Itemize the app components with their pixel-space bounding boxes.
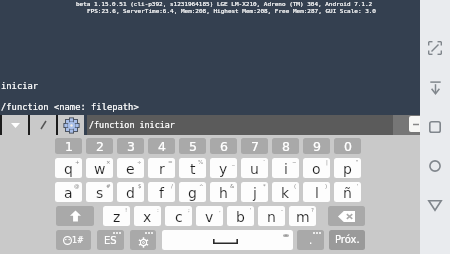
- staticText: 6: [220, 139, 228, 154]
- button[interactable]: h: [210, 182, 237, 202]
- staticText: c: [175, 209, 183, 225]
- button[interactable]: o: [303, 158, 330, 178]
- staticText: 4: [158, 139, 166, 154]
- button[interactable]: Insert slash: [30, 115, 56, 135]
- button[interactable]: g: [179, 182, 206, 202]
- button[interactable]: b: [227, 206, 254, 226]
- staticText: 7: [251, 139, 259, 154]
- staticText: -: [281, 207, 283, 213]
- button[interactable]: d: [117, 182, 144, 202]
- button[interactable]: ñ: [334, 182, 361, 202]
- button[interactable]: 6: [210, 138, 237, 154]
- staticText: ñ: [343, 185, 352, 201]
- button[interactable]: 8: [272, 138, 299, 154]
- staticText: ': [250, 207, 252, 213]
- staticText: 5: [189, 139, 197, 154]
- staticText: 1: [65, 139, 73, 154]
- button[interactable]: Show suggestions: [2, 115, 28, 135]
- button[interactable]: m: [289, 206, 316, 226]
- button[interactable]: k: [272, 182, 299, 202]
- staticText: s: [96, 185, 104, 201]
- staticText: q: [64, 161, 73, 177]
- staticText: d: [126, 185, 135, 201]
- staticText: /: [171, 183, 173, 189]
- button[interactable]: q: [55, 158, 82, 178]
- staticText: :: [157, 207, 159, 213]
- staticText: |: [326, 159, 328, 165]
- button[interactable]: w: [86, 158, 113, 178]
- staticText: b: [236, 209, 245, 225]
- button[interactable]: n: [258, 206, 285, 226]
- button[interactable]: Próx.: [329, 230, 365, 250]
- staticText: $: [138, 183, 142, 189]
- staticText: beta 1.15.0.51 (cli-p392, s1231964185) L…: [76, 0, 373, 7]
- button[interactable]: f: [148, 182, 175, 202]
- staticText: n: [267, 209, 276, 225]
- button[interactable]: 9: [303, 138, 330, 154]
- staticText: +: [75, 159, 80, 165]
- staticText: /function <name: filepath>: [1, 102, 139, 112]
- button[interactable]: y: [210, 158, 237, 178]
- staticText: ^: [199, 183, 204, 189]
- staticText: FPS:23.6, ServerTime:6.4, Mem:208, Highe…: [87, 7, 376, 14]
- button[interactable]: Expand: [420, 35, 450, 61]
- button[interactable]: 4: [148, 138, 175, 154]
- button[interactable]: r: [148, 158, 175, 178]
- button[interactable]: t: [179, 158, 206, 178]
- staticText: x: [143, 209, 152, 225]
- staticText: ~: [292, 159, 297, 165]
- button[interactable]: v: [196, 206, 223, 226]
- button[interactable]: Command input: [87, 115, 393, 135]
- button[interactable]: Space: [162, 230, 293, 250]
- staticText: a: [64, 185, 73, 201]
- staticText: u: [250, 161, 259, 177]
- staticText: 9: [313, 139, 321, 154]
- staticText: p: [343, 161, 352, 177]
- staticText: 2: [96, 139, 104, 154]
- button[interactable]: Symbols: [56, 230, 91, 250]
- button[interactable]: 5: [179, 138, 206, 154]
- button[interactable]: Hide navigation bar: [420, 74, 450, 100]
- button[interactable]: Settings: [58, 115, 84, 135]
- button[interactable]: c: [165, 206, 192, 226]
- button[interactable]: e: [117, 158, 144, 178]
- staticText: m: [296, 209, 310, 225]
- button[interactable]: s: [86, 182, 113, 202]
- button[interactable]: z: [103, 206, 130, 226]
- button[interactable]: Shift: [56, 206, 94, 226]
- button[interactable]: Back: [420, 192, 450, 218]
- button[interactable]: l: [303, 182, 330, 202]
- staticText: e: [126, 161, 135, 177]
- staticText: w: [94, 161, 106, 177]
- button[interactable]: x: [134, 206, 161, 226]
- staticText: j: [253, 185, 257, 201]
- button[interactable]: ES language: [97, 230, 124, 250]
- staticText: o: [312, 161, 321, 177]
- button[interactable]: Keyboard settings: [130, 230, 156, 250]
- staticText: ÷: [137, 159, 142, 165]
- staticText: !: [125, 207, 128, 213]
- staticText: v: [205, 209, 214, 225]
- button[interactable]: 3: [117, 138, 144, 154]
- staticText: Próx.: [335, 234, 360, 246]
- staticText: &: [230, 183, 235, 189]
- button[interactable]: 1: [55, 138, 82, 154]
- button[interactable]: .: [297, 230, 324, 250]
- button[interactable]: Recent apps: [420, 114, 450, 140]
- button[interactable]: 2: [86, 138, 113, 154]
- button[interactable]: u: [241, 158, 268, 178]
- button[interactable]: Backspace: [328, 206, 365, 226]
- staticText: 3: [127, 139, 135, 154]
- staticText: g: [188, 185, 197, 201]
- button[interactable]: i: [272, 158, 299, 178]
- button[interactable]: a: [55, 182, 82, 202]
- staticText: ": [356, 159, 359, 165]
- button[interactable]: 7: [241, 138, 268, 154]
- button[interactable]: Home: [420, 153, 450, 179]
- staticText: `: [263, 159, 266, 165]
- button[interactable]: j: [241, 182, 268, 202]
- button[interactable]: p: [334, 158, 361, 178]
- staticText: 0: [344, 139, 352, 154]
- button[interactable]: 0: [334, 138, 361, 154]
